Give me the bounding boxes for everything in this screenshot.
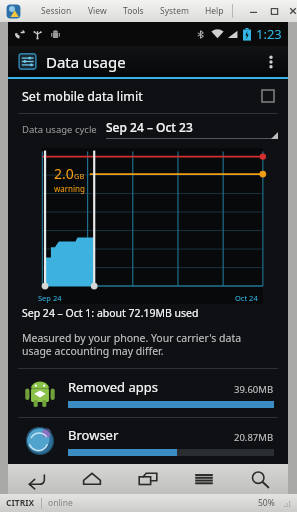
button[interactable]: Help — [197, 3, 232, 19]
staticText: warning — [54, 183, 85, 194]
button[interactable]: More options — [260, 46, 282, 77]
staticText: Session — [41, 5, 72, 17]
button[interactable]: max — [268, 5, 280, 17]
staticText: Browser — [68, 426, 119, 444]
button[interactable]: Data usage cycle — [8, 114, 288, 144]
button[interactable]: System — [152, 3, 197, 19]
button[interactable]: Menu — [176, 464, 232, 494]
button[interactable]: Tools — [115, 3, 152, 19]
staticText: Tools — [123, 5, 144, 17]
staticText: 39.60MB — [234, 383, 274, 396]
button[interactable]: Back — [8, 464, 64, 494]
button[interactable]: Recent apps — [120, 464, 176, 494]
staticText: Help — [205, 5, 224, 17]
staticText: Sep 24 – Oct 23 — [106, 119, 193, 135]
staticText: Set mobile data limit — [22, 88, 143, 105]
staticText: Removed apps — [68, 378, 158, 396]
staticText: Measured by your phone. Your carrier's d… — [22, 331, 242, 358]
button[interactable]: Set mobile data limit — [8, 79, 288, 113]
button[interactable]: Home — [64, 464, 120, 494]
staticText: 20.87MB — [234, 431, 274, 444]
staticText: Sep 24 – Oct 1: about 72.19MB used — [22, 306, 199, 320]
staticText: Oct 24 — [235, 293, 258, 303]
button[interactable]: Removed apps — [8, 369, 288, 417]
staticText: View — [88, 5, 107, 17]
staticText: GB — [74, 171, 85, 181]
staticText: 50% — [258, 497, 275, 509]
staticText: CITRIX — [6, 497, 35, 509]
staticText: Data usage — [46, 52, 126, 72]
staticText: online — [48, 497, 73, 509]
button[interactable]: Session — [33, 3, 80, 19]
button[interactable]: View — [80, 3, 115, 19]
button[interactable]: Settings — [18, 52, 37, 71]
button[interactable]: close — [289, 5, 297, 17]
staticText: System — [160, 5, 189, 17]
staticText: 2.0 — [54, 164, 74, 183]
staticText: Sep 24 — [38, 293, 62, 303]
button[interactable]: Browser — [8, 418, 288, 464]
staticText: Data usage cycle — [22, 123, 97, 136]
button[interactable]: min — [247, 5, 259, 17]
button[interactable]: Search — [232, 464, 288, 494]
staticText: 1:23 — [256, 25, 282, 43]
